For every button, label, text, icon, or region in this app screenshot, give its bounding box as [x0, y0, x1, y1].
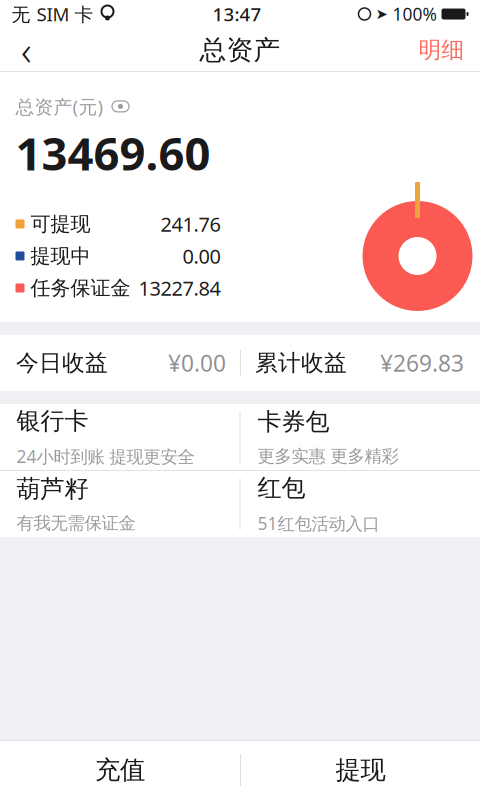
staticText: 13:47: [212, 2, 261, 26]
staticText: 有我无需保证金: [16, 513, 135, 534]
button[interactable]: 今日收益: [0, 335, 240, 391]
staticText: 总资产: [199, 34, 280, 66]
button[interactable]: 卡券包: [240, 404, 480, 470]
staticText: 今日收益: [16, 349, 108, 377]
button[interactable]: 银行卡: [0, 404, 239, 470]
staticText: 更多实惠 更多精彩: [257, 446, 398, 467]
staticText: ¥0.00: [168, 348, 226, 378]
staticText: ‹: [21, 23, 32, 76]
staticText: 卡券包: [257, 407, 329, 437]
staticText: ¥269.83: [380, 348, 464, 378]
staticText: 可提现: [30, 212, 90, 236]
staticText: 明细: [418, 36, 464, 64]
staticText: 无 SIM 卡: [11, 2, 93, 26]
staticText: ➤: [375, 6, 387, 22]
staticText: 总资产(元): [15, 94, 103, 119]
staticText: 任务保证金: [30, 276, 130, 300]
staticText: 红包: [257, 473, 305, 503]
button[interactable]: 累计收益: [241, 335, 480, 391]
staticText: 241.76: [160, 211, 220, 237]
button[interactable]: 葫芦籽: [0, 471, 239, 537]
button[interactable]: 红包: [240, 471, 480, 537]
staticText: 银行卡: [16, 406, 88, 436]
staticText: 充值: [95, 754, 145, 785]
button[interactable]: 明细: [402, 28, 480, 72]
staticText: 提现中: [30, 244, 90, 268]
staticText: 13469.60: [15, 123, 210, 183]
button[interactable]: 提现: [241, 740, 480, 800]
button[interactable]: 充值: [0, 740, 240, 800]
staticText: 51红包活动入口: [257, 512, 379, 535]
staticText: 提现: [335, 754, 385, 785]
staticText: 24小时到账 提现更安全: [16, 445, 194, 468]
button[interactable]: Back: [0, 28, 53, 72]
staticText: 葫芦籽: [16, 474, 88, 504]
staticText: 0.00: [182, 243, 220, 269]
staticText: 累计收益: [255, 349, 347, 377]
staticText: 100%: [392, 2, 436, 25]
staticText: 13227.84: [138, 275, 220, 301]
